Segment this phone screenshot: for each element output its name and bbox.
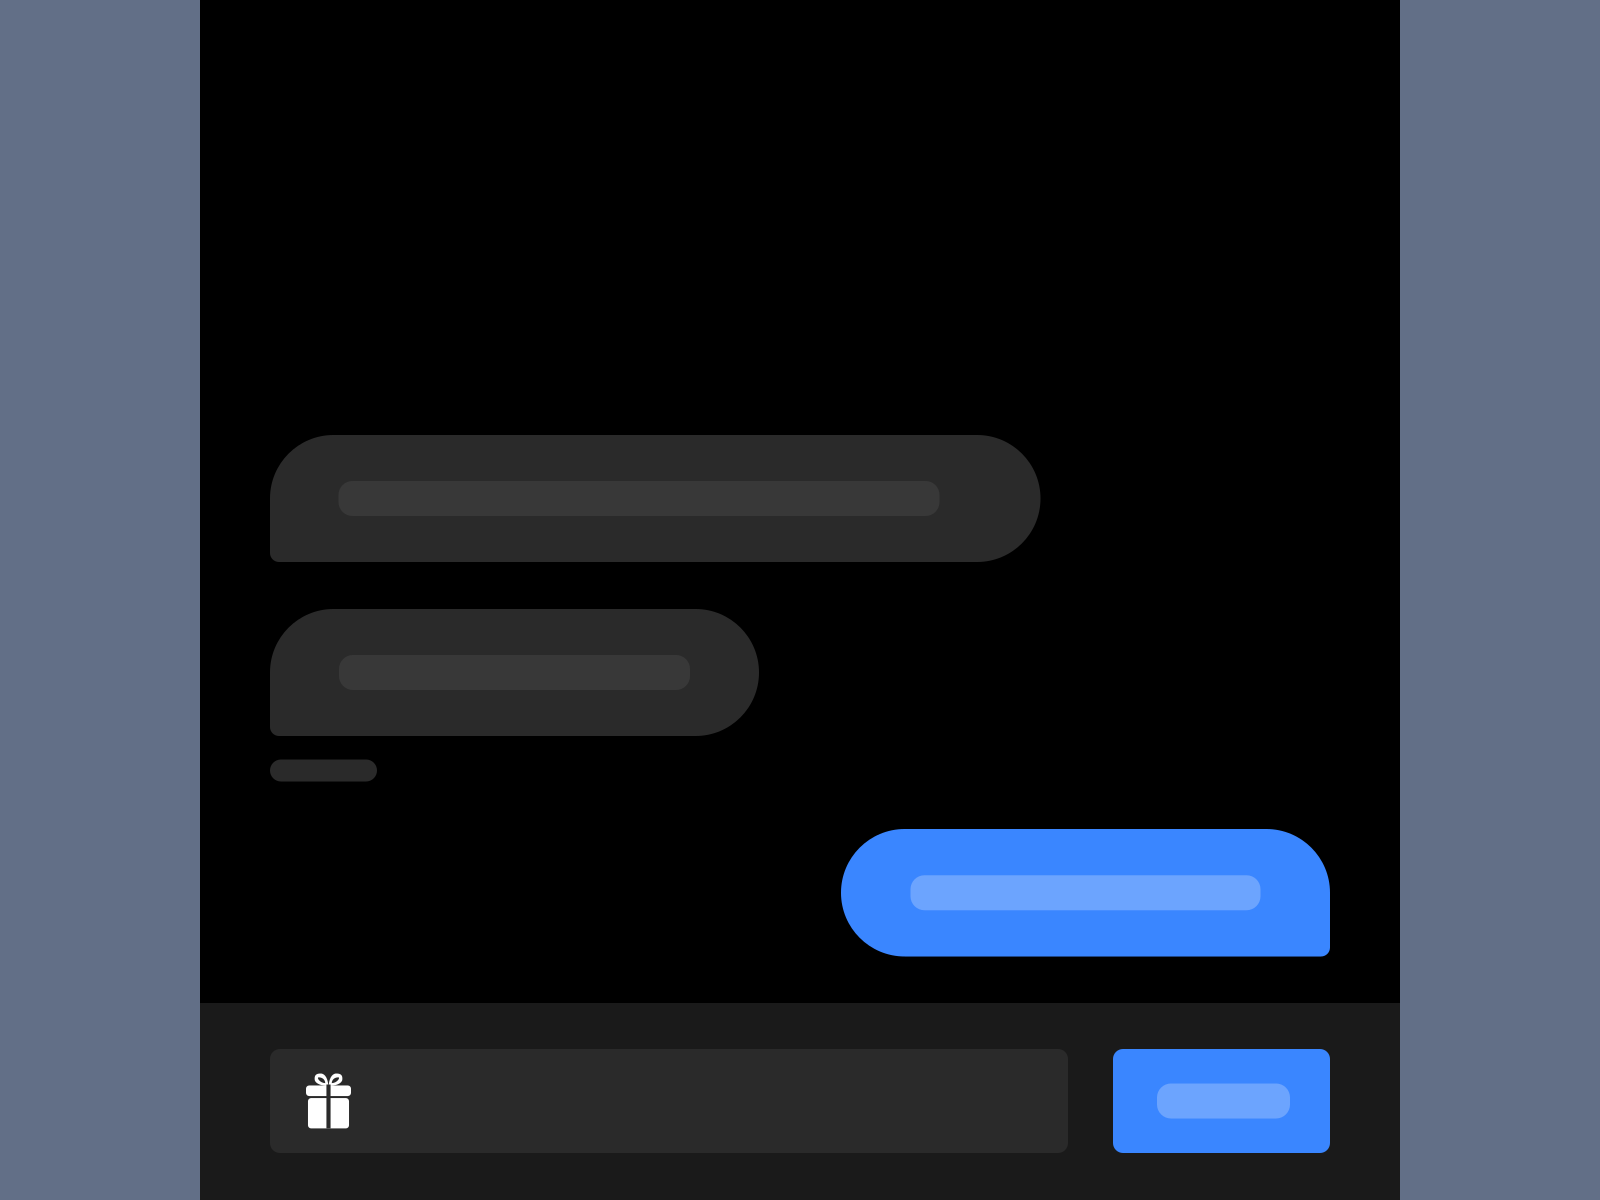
button[interactable]: Sent message (841, 829, 1330, 956)
button[interactable]: Received message (270, 609, 759, 736)
button[interactable]: Send (1113, 1049, 1330, 1153)
button[interactable]: Received message (270, 435, 1040, 562)
button[interactable]: Send a gift (270, 1049, 369, 1153)
